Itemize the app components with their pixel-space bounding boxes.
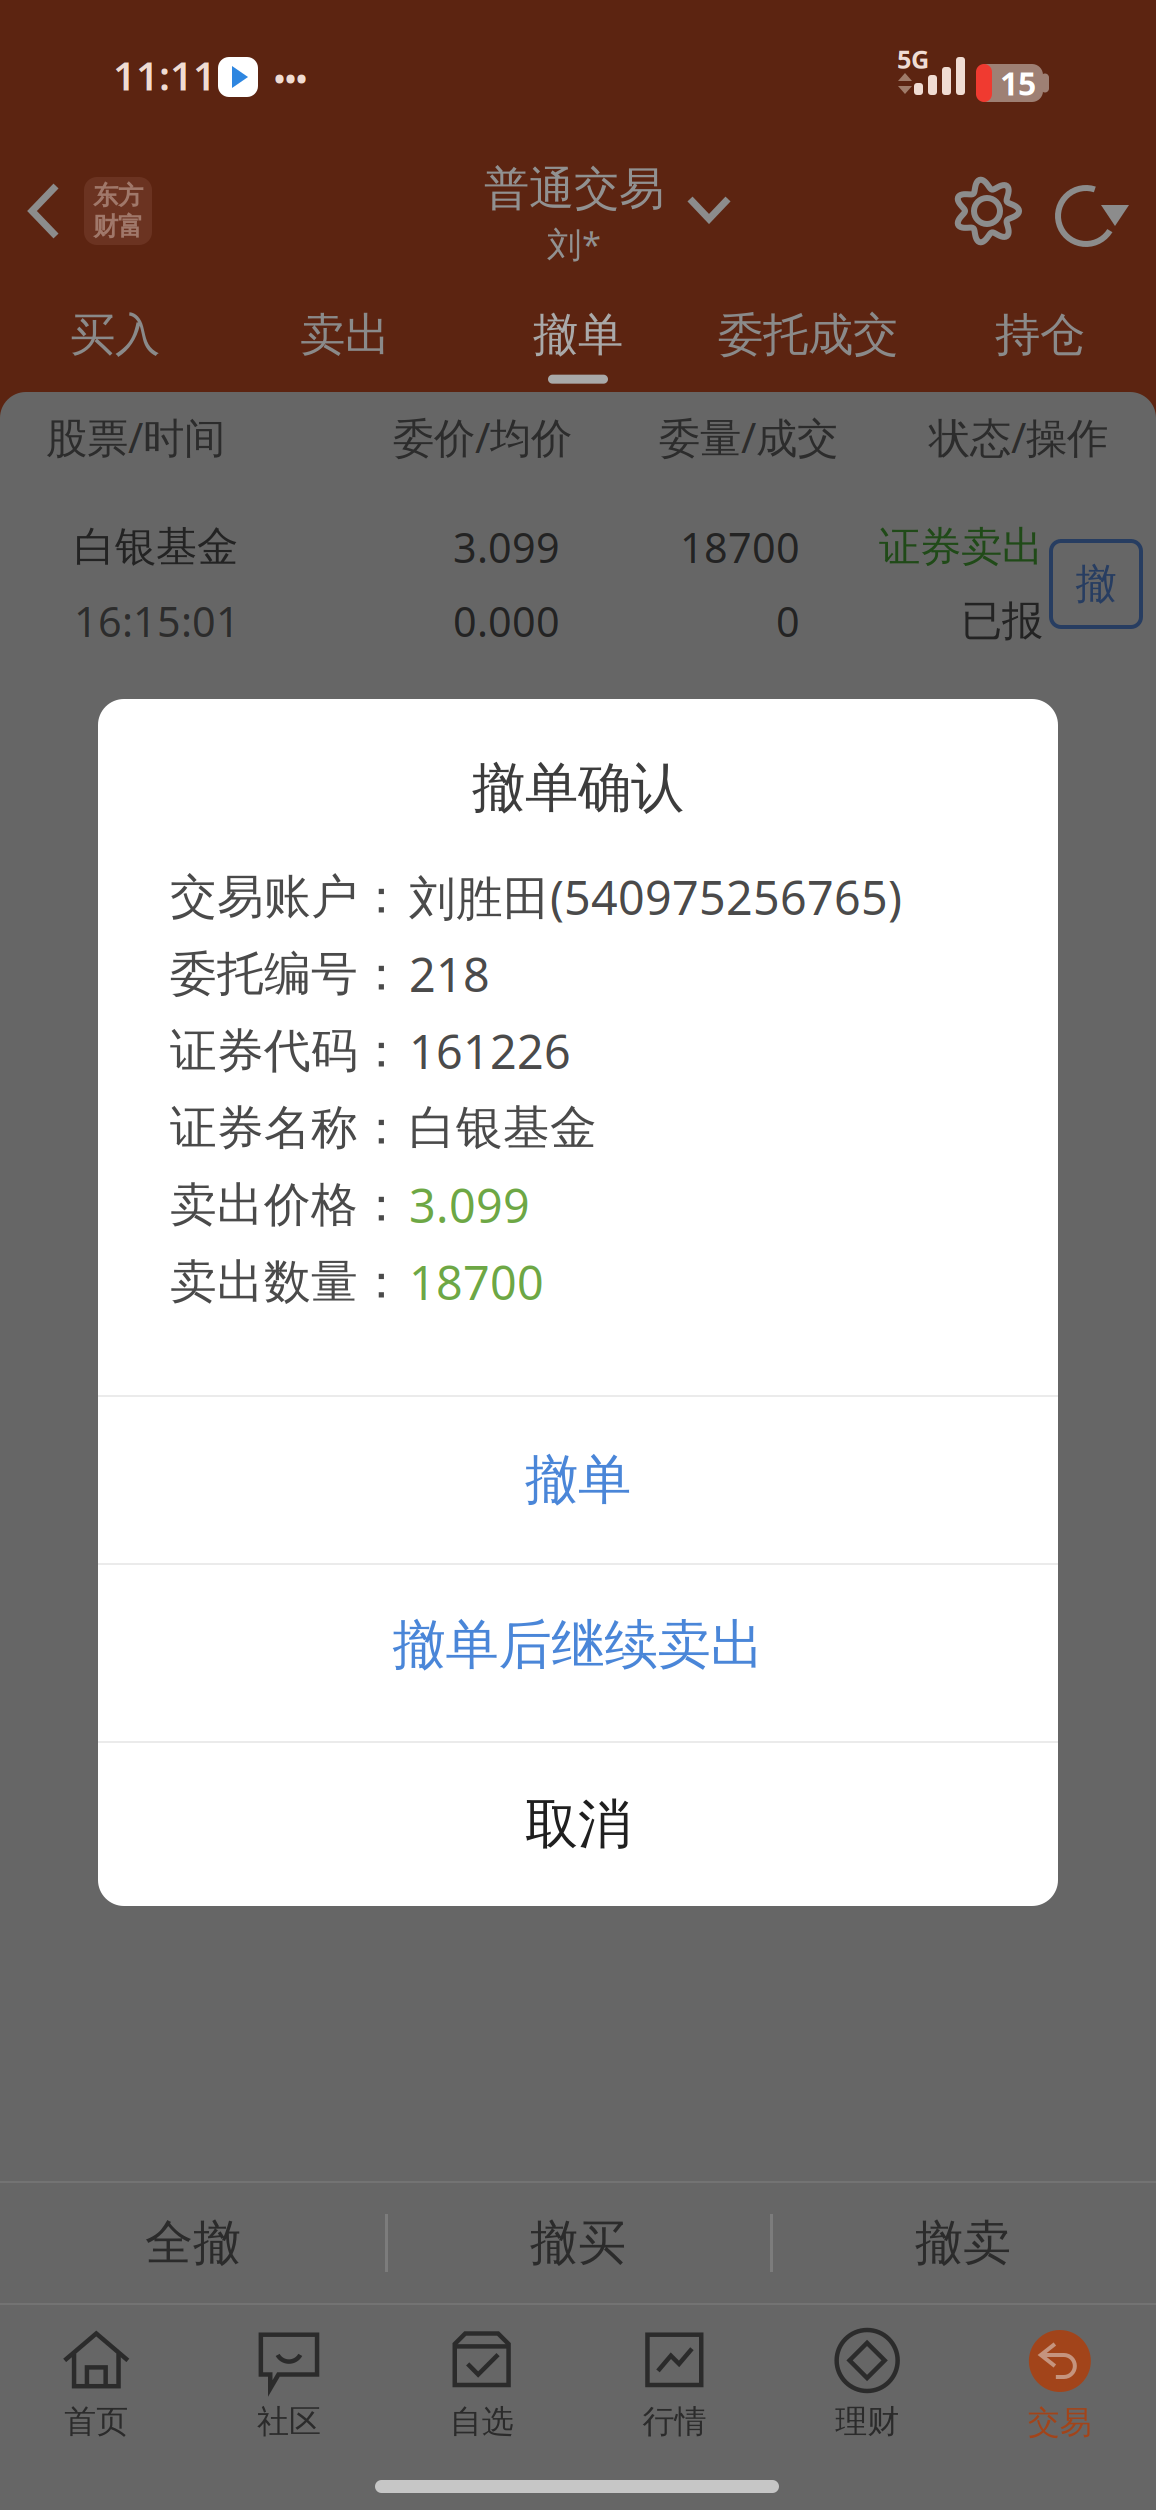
- button[interactable]: 全撤: [0, 2178, 1156, 2510]
- staticText: 5G: [897, 42, 929, 76]
- staticText: 状态/操作: [929, 410, 1108, 464]
- staticText: 首页: [64, 2402, 128, 2441]
- button[interactable]: Back: [0, 13, 1156, 407]
- staticText: 财富: [93, 211, 143, 242]
- staticText: 全撤: [145, 2213, 241, 2272]
- staticText: 证券卖出: [879, 522, 1043, 572]
- staticText: 撤单确认: [472, 755, 684, 821]
- staticText: 东方: [93, 180, 143, 211]
- staticText: 委量/成交: [659, 410, 838, 464]
- button[interactable]: 撤卖: [0, 2178, 1156, 2510]
- staticText: 撤单: [525, 1447, 631, 1513]
- staticText: 证券代码：: [170, 1022, 405, 1080]
- staticText: 委托成交: [718, 307, 898, 363]
- staticText: 撤单: [533, 307, 623, 363]
- staticText: 0.000: [453, 594, 560, 648]
- staticText: 16:15:01: [74, 594, 240, 648]
- staticText: 白银基金: [409, 1099, 597, 1157]
- staticText: 15: [1000, 62, 1036, 104]
- staticText: 买入: [70, 307, 160, 363]
- staticText: 撤买: [530, 2213, 626, 2272]
- staticText: 行情: [642, 2402, 706, 2441]
- button[interactable]: Settings: [0, 13, 1156, 407]
- staticText: 3.099: [409, 1174, 530, 1236]
- staticText: 11:11: [113, 48, 216, 101]
- staticText: 218: [409, 943, 490, 1005]
- staticText: 卖出: [300, 307, 390, 363]
- button[interactable]: Refresh: [0, 13, 1156, 407]
- button[interactable]: 撤单后继续卖出: [98, 699, 1058, 1906]
- staticText: 委托编号：: [170, 945, 405, 1003]
- staticText: 卖出数量：: [170, 1253, 405, 1311]
- staticText: 撤: [1075, 559, 1116, 609]
- staticText: 持仓: [995, 307, 1085, 363]
- button[interactable]: 撤买: [0, 2178, 1156, 2510]
- staticText: 撤单后继续卖出: [392, 1612, 763, 1678]
- staticText: 18700: [680, 520, 800, 574]
- staticText: 卖出价格：: [170, 1176, 405, 1234]
- staticText: 18700: [409, 1251, 544, 1313]
- button[interactable]: 社区: [0, 2178, 1156, 2510]
- staticText: 交易: [1028, 2403, 1092, 2442]
- staticText: 理财: [835, 2402, 899, 2441]
- button[interactable]: 委托成交: [0, 13, 1156, 407]
- staticText: 3.099: [453, 520, 560, 574]
- staticText: 刘*: [547, 221, 601, 267]
- button[interactable]: 持仓: [0, 13, 1156, 407]
- staticText: 自选: [450, 2402, 514, 2441]
- button[interactable]: 自选: [0, 2178, 1156, 2510]
- button[interactable]: 取消: [98, 699, 1058, 1906]
- button[interactable]: 买入: [0, 13, 1156, 407]
- button[interactable]: 交易: [0, 2178, 1156, 2510]
- staticText: •••: [274, 58, 307, 97]
- button[interactable]: 理财: [0, 2178, 1156, 2510]
- button[interactable]: 行情: [0, 2178, 1156, 2510]
- staticText: 撤卖: [915, 2213, 1011, 2272]
- button[interactable]: 首页: [0, 2178, 1156, 2510]
- staticText: 取消: [525, 1792, 631, 1857]
- staticText: 白银基金: [74, 522, 238, 572]
- staticText: 普通交易: [484, 161, 664, 217]
- staticText: 交易账户：: [170, 868, 405, 926]
- staticText: 股票/时间: [46, 410, 225, 464]
- staticText: 已报: [961, 596, 1043, 646]
- button[interactable]: 撤单: [98, 699, 1058, 1906]
- staticText: 刘胜田(540975256765): [409, 866, 902, 928]
- button[interactable]: 普通交易: [0, 13, 1156, 407]
- staticText: 委价/均价: [393, 410, 572, 464]
- staticText: 161226: [409, 1020, 571, 1082]
- staticText: 证券名称：: [170, 1099, 405, 1157]
- staticText: 0: [776, 594, 800, 648]
- button[interactable]: 卖出: [0, 13, 1156, 407]
- staticText: 社区: [257, 2402, 321, 2441]
- button[interactable]: 撤单: [0, 392, 1156, 1451]
- button[interactable]: 撤单: [0, 13, 1156, 407]
